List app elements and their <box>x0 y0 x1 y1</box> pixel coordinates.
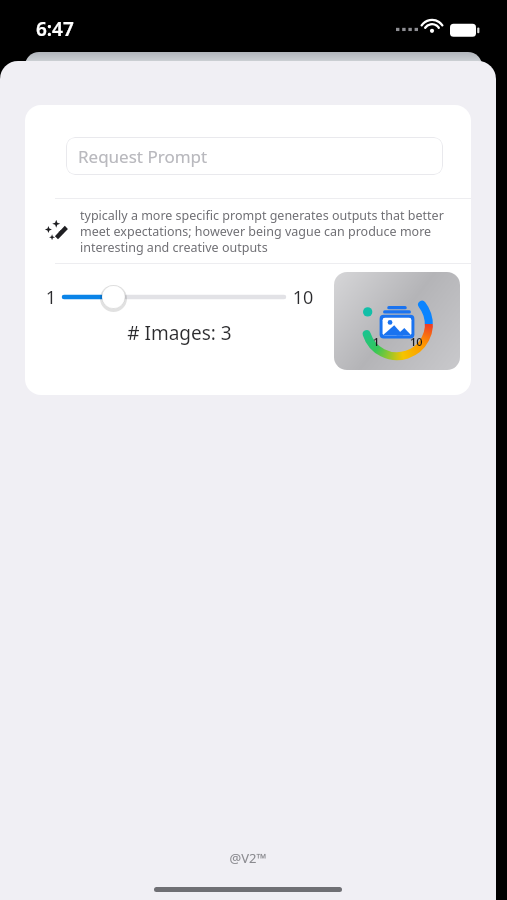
button[interactable]: Number of images gauge <box>334 272 460 370</box>
staticText: # Images: 3 <box>127 320 232 346</box>
staticText: 10 <box>286 285 320 310</box>
staticText: 6:47 <box>36 16 74 42</box>
staticText: @V2™ <box>0 849 496 867</box>
staticText: 1 <box>373 334 380 349</box>
staticText: Request Prompt <box>78 145 208 168</box>
button[interactable]: Request Prompt <box>66 137 443 175</box>
other: Prompt tip <box>44 218 70 244</box>
staticText: 10 <box>410 334 423 349</box>
button[interactable]: 1 <box>40 280 320 314</box>
staticText: 1 <box>40 285 62 310</box>
staticText: typically a more specific prompt generat… <box>80 207 452 256</box>
